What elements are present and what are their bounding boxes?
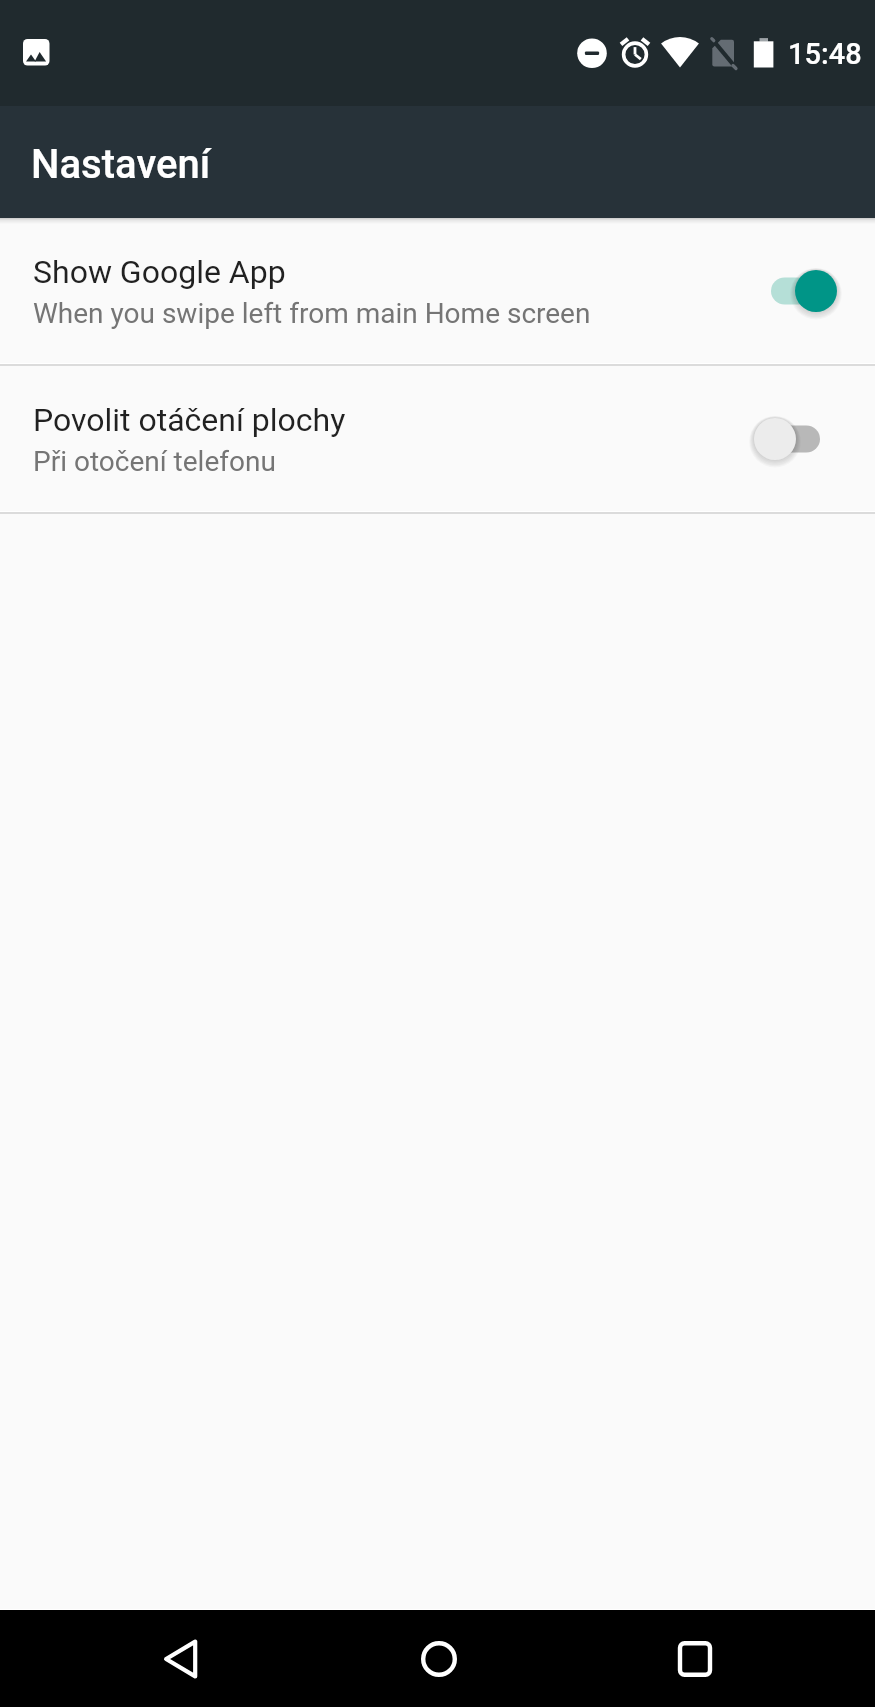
staticText: When you swipe left from main Home scree… — [33, 297, 591, 330]
button[interactable]: Home — [390, 1610, 487, 1707]
staticText: Show Google App — [33, 253, 286, 291]
staticText: Povolit otáčení plochy — [33, 401, 346, 439]
staticText: 15:48 — [788, 37, 862, 71]
button[interactable]: Recent apps — [646, 1610, 743, 1707]
button[interactable]: Show Google App — [0, 218, 875, 363]
button[interactable]: Disabled — [753, 397, 875, 481]
staticText: Při otočení telefonu — [33, 445, 276, 478]
staticText: Nastavení — [31, 141, 211, 188]
button[interactable]: Povolit otáčení plochy — [0, 366, 875, 511]
button[interactable]: Enabled — [753, 249, 875, 333]
button[interactable]: Back — [132, 1610, 229, 1707]
